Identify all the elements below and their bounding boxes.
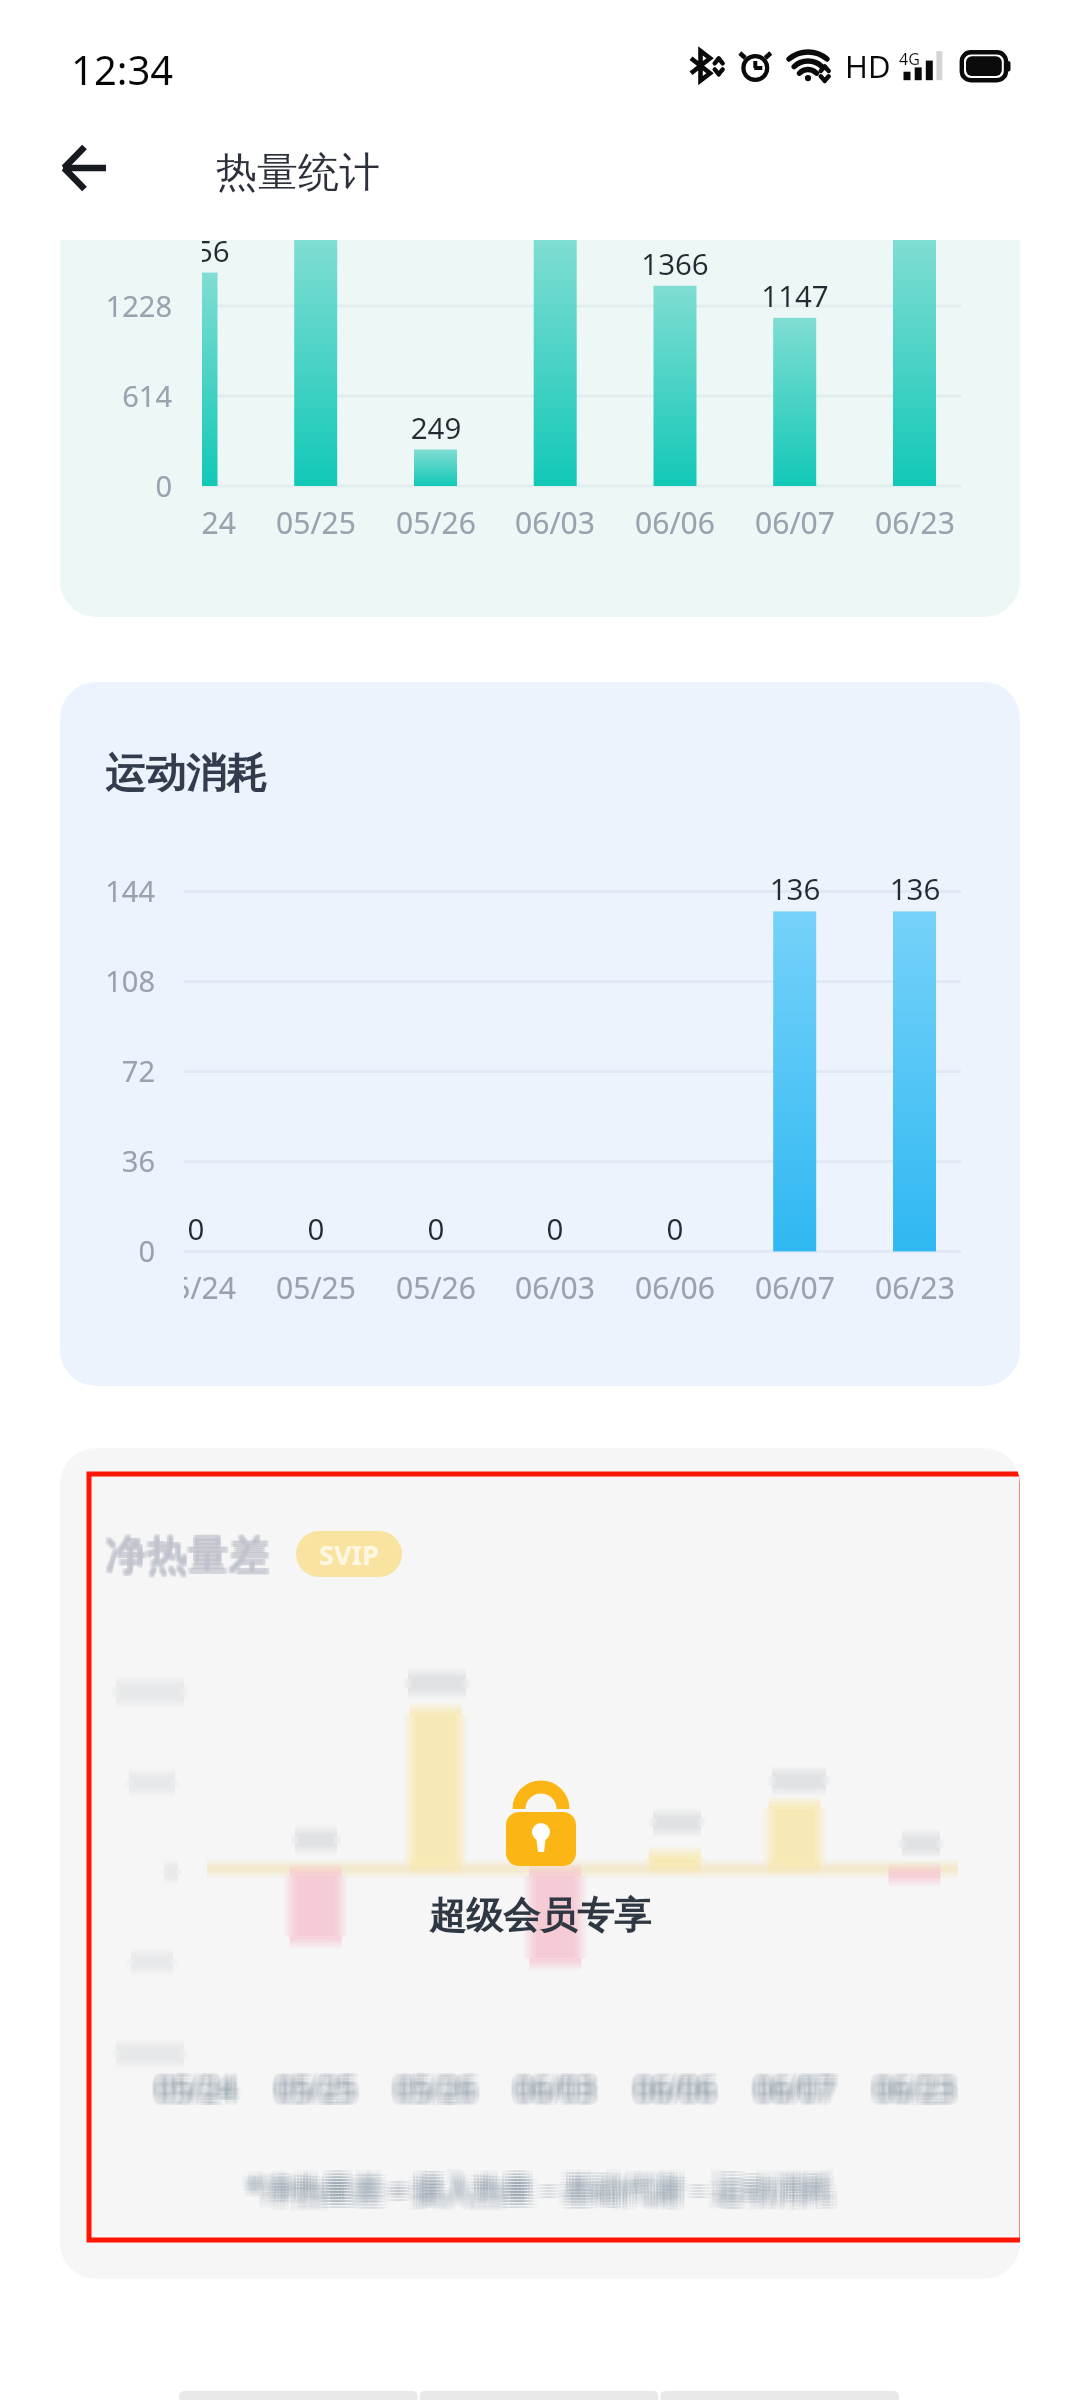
staticText: 06/06 bbox=[575, 1267, 775, 1308]
staticText: 05/26 bbox=[60, 2073, 836, 2114]
staticText: 1228 bbox=[60, 286, 172, 325]
staticText: *净热量差＝摄入热量－基础代谢－运动消耗 bbox=[140, 2168, 940, 2209]
staticText: *净热量差＝摄入热量－基础代谢－运动消耗 bbox=[134, 2171, 934, 2212]
staticText: 05/25 bbox=[60, 2073, 721, 2114]
staticText: 06/23 bbox=[509, 2071, 1020, 2112]
staticText: 06/23 bbox=[517, 2065, 1020, 2106]
staticText: 05/25 bbox=[60, 2065, 721, 2106]
staticText: 06/23 bbox=[515, 2071, 1020, 2112]
staticText: 05/26 bbox=[60, 2068, 838, 2109]
staticText: 05/26 bbox=[60, 2065, 841, 2106]
staticText: 06/23 bbox=[815, 502, 961, 543]
staticText: 06/06 bbox=[275, 2063, 1020, 2104]
staticText: 05/24 bbox=[60, 2071, 599, 2112]
staticText: 4G bbox=[899, 48, 920, 70]
staticText: 06/07 bbox=[397, 2071, 1020, 2112]
staticText: 06/06 bbox=[272, 2068, 1020, 2109]
staticText: 05/25 bbox=[216, 502, 416, 543]
staticText: *净热量差＝摄入热量－基础代谢－运动消耗 bbox=[134, 2162, 934, 2203]
staticText: 614 bbox=[60, 376, 172, 415]
staticText: 05/24 bbox=[60, 2063, 599, 2104]
staticText: 净热量差 bbox=[104, 1528, 268, 1580]
staticText: 净热量差 bbox=[106, 1528, 270, 1580]
staticText: 05/25 bbox=[60, 2068, 718, 2109]
staticText: 06/23 bbox=[512, 2065, 1020, 2106]
staticText: 05/25 bbox=[60, 2073, 716, 2114]
staticText: 05/26 bbox=[60, 2071, 833, 2112]
staticText: 06/23 bbox=[512, 2073, 1020, 2114]
staticText: 05/26 bbox=[60, 2071, 841, 2112]
staticText: 06/07 bbox=[695, 502, 895, 543]
staticText: 05/26 bbox=[60, 2063, 833, 2104]
staticText: 06/23 bbox=[815, 1267, 961, 1308]
staticText: 06/07 bbox=[392, 2063, 1020, 2104]
staticText: 06/07 bbox=[390, 2065, 1020, 2106]
staticText: 06/07 bbox=[400, 2063, 1020, 2104]
staticText: 05/24 bbox=[60, 2068, 596, 2109]
staticText: 108 bbox=[60, 961, 155, 1000]
staticText: 06/06 bbox=[275, 2068, 1020, 2109]
button[interactable]: 净热量差 bbox=[60, 1448, 1020, 2279]
staticText: *净热量差＝摄入热量－基础代谢－运动消耗 bbox=[140, 2174, 940, 2215]
staticText: 06/03 bbox=[150, 2068, 950, 2109]
button[interactable]: Back bbox=[40, 126, 132, 210]
staticText: 06/07 bbox=[392, 2071, 1020, 2112]
staticText: 05/25 bbox=[60, 2071, 711, 2112]
staticText: 05/24 bbox=[60, 2065, 601, 2106]
staticText: 06/23 bbox=[520, 2068, 1020, 2109]
staticText: 06/07 bbox=[390, 2073, 1020, 2114]
staticText: 06/07 bbox=[395, 2073, 1020, 2114]
staticText: 06/07 bbox=[400, 2073, 1020, 2114]
staticText: 05/26 bbox=[60, 2068, 833, 2109]
staticText: 12:34 bbox=[71, 42, 174, 96]
staticText: 06/06 bbox=[275, 2065, 1020, 2106]
staticText: 06/03 bbox=[160, 2073, 960, 2114]
staticText: 05/25 bbox=[60, 2073, 718, 2114]
staticText: 06/07 bbox=[390, 2071, 1020, 2112]
staticText: 05/24 bbox=[60, 2071, 601, 2112]
staticText: 06/03 bbox=[155, 2071, 955, 2112]
staticText: 05/25 bbox=[60, 2073, 711, 2114]
staticText: 06/06 bbox=[280, 2065, 1020, 2106]
staticText: 05/26 bbox=[60, 2071, 838, 2112]
staticText: 06/23 bbox=[517, 2073, 1020, 2114]
staticText: 06/06 bbox=[272, 2071, 1020, 2112]
staticText: 05/25 bbox=[216, 1267, 416, 1308]
staticText: 05/25 bbox=[60, 2071, 718, 2112]
staticText: 06/03 bbox=[155, 2073, 955, 2114]
staticText: 06/07 bbox=[397, 2065, 1020, 2106]
staticText: 06/03 bbox=[150, 2063, 950, 2104]
button[interactable]: 1228 bbox=[60, 240, 1020, 617]
staticText: 0 bbox=[60, 466, 172, 505]
staticText: 06/23 bbox=[520, 2065, 1020, 2106]
staticText: 06/23 bbox=[509, 2073, 1020, 2114]
staticText: 05/26 bbox=[60, 2071, 830, 2112]
staticText: 06/06 bbox=[272, 2073, 1020, 2114]
staticText: 0 bbox=[184, 1208, 296, 1248]
staticText: 06/06 bbox=[280, 2068, 1020, 2109]
staticText: 06/06 bbox=[278, 2065, 1020, 2106]
staticText: 136 bbox=[815, 868, 961, 908]
staticText: *净热量差＝摄入热量－基础代谢－运动消耗 bbox=[140, 2171, 940, 2212]
staticText: 05/25 bbox=[60, 2063, 716, 2104]
staticText: 06/07 bbox=[400, 2071, 1020, 2112]
staticText: 06/06 bbox=[275, 2073, 1020, 2114]
staticText: 05/25 bbox=[60, 2071, 713, 2112]
staticText: 06/23 bbox=[509, 2068, 1020, 2109]
staticText: HD bbox=[845, 45, 891, 87]
staticText: 06/03 bbox=[150, 2065, 950, 2106]
button[interactable]: 运动消耗 bbox=[60, 682, 1020, 1386]
staticText: 06/23 bbox=[517, 2071, 1020, 2112]
staticText: 05/25 bbox=[60, 2068, 711, 2109]
staticText: 06/23 bbox=[517, 2068, 1020, 2109]
staticText: 05/25 bbox=[60, 2068, 716, 2109]
staticText: *净热量差＝摄入热量－基础代谢－运动消耗 bbox=[143, 2165, 943, 2206]
staticText: 05/24 bbox=[60, 2068, 591, 2109]
staticText: 05/26 bbox=[60, 2065, 830, 2106]
staticText: *净热量差＝摄入热量－基础代谢－运动消耗 bbox=[137, 2168, 937, 2209]
staticText: 净热量差 bbox=[104, 1532, 268, 1584]
staticText: *净热量差＝摄入热量－基础代谢－运动消耗 bbox=[146, 2165, 946, 2206]
staticText: 06/03 bbox=[160, 2071, 960, 2112]
staticText: 净热量差 bbox=[107, 1532, 271, 1584]
staticText: 05/26 bbox=[60, 2063, 836, 2104]
